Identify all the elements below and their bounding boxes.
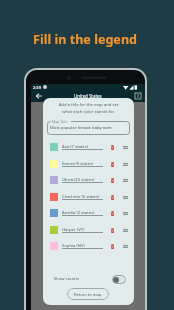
staticText: Add a title for the map and set what eac… — [43, 102, 134, 114]
button[interactable]: Delete — [108, 160, 117, 169]
other: Reorder — [121, 193, 130, 202]
button[interactable]: Show counts — [47, 272, 130, 286]
staticText: 2:39 — [33, 85, 41, 90]
other: Reorder — [121, 160, 130, 169]
other: Reorder — [121, 209, 130, 218]
button[interactable]: Delete — [108, 176, 117, 185]
staticText: Emma (9 states) — [62, 161, 94, 167]
button[interactable]: Charlotte (6 states) — [43, 189, 134, 205]
button[interactable]: Delete — [108, 193, 117, 202]
button[interactable]: Amelia (2 states) — [43, 205, 134, 221]
other: Reorder — [121, 176, 130, 185]
button[interactable]: Return to map — [67, 288, 109, 300]
staticText: Return to map — [74, 292, 102, 297]
button[interactable]: Delete — [108, 226, 117, 235]
button[interactable]: Delete — [108, 242, 117, 251]
staticText: Harper (VT) — [62, 227, 85, 233]
button[interactable]: Ava (7 states) — [43, 139, 134, 155]
staticText: Olivia (25 states) — [62, 177, 95, 183]
button[interactable]: Back — [33, 90, 45, 102]
other: Reorder — [121, 143, 130, 152]
button[interactable]: Olivia (25 states) — [43, 172, 134, 188]
button[interactable]: Emma (9 states) — [43, 156, 134, 172]
button[interactable]: Sophia (NV) — [43, 238, 134, 254]
button[interactable]: Map Title — [47, 121, 130, 135]
other: Reorder — [121, 226, 130, 235]
staticText: Ava (7 states) — [62, 144, 88, 150]
other: Reorder — [121, 242, 130, 251]
staticText: Map Title — [52, 119, 68, 124]
button[interactable]: Harper (VT) — [43, 222, 134, 238]
button[interactable]: Delete — [108, 143, 117, 152]
button[interactable]: Delete — [108, 209, 117, 218]
staticText: Fill in the legend — [33, 31, 138, 48]
staticText: Sophia (NV) — [62, 243, 85, 249]
staticText: Show counts — [54, 276, 79, 282]
staticText: Amelia (2 states) — [62, 210, 95, 216]
button[interactable]: Map options — [133, 91, 143, 101]
staticText: Most popular female baby nam — [50, 125, 112, 131]
staticText: United States — [74, 93, 102, 99]
staticText: Charlotte (6 states) — [62, 194, 100, 200]
